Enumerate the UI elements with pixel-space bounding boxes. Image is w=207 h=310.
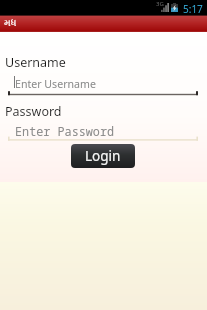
staticText: Username [5,54,66,71]
staticText: Enter Password [15,123,115,139]
button[interactable]: Enter Password [8,118,198,142]
staticText: Login [85,147,121,165]
staticText: 3G [156,0,164,8]
button[interactable]: Enter Username [8,73,198,97]
staticText: 5:17 [183,2,203,16]
staticText: Enter Username [15,77,96,91]
staticText: મધ [4,18,17,27]
staticText: Password [5,103,62,120]
button[interactable]: Login [71,144,135,168]
